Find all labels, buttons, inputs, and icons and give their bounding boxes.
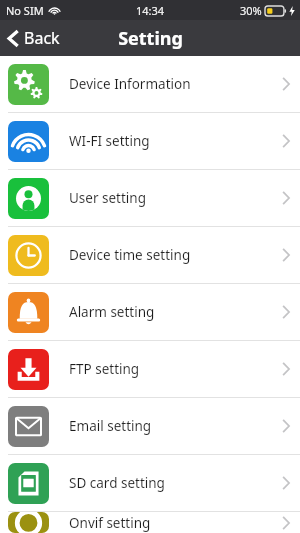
staticText: Back: [24, 27, 60, 49]
button[interactable]: FTP setting: [0, 341, 300, 397]
staticText: User setting: [69, 189, 146, 207]
staticText: SD card setting: [69, 474, 165, 492]
staticText: Device time setting: [69, 246, 191, 264]
staticText: WI-FI setting: [69, 132, 150, 150]
button[interactable]: Device Information: [0, 56, 300, 112]
button[interactable]: Alarm setting: [0, 284, 300, 340]
button[interactable]: Back: [0, 23, 70, 53]
staticText: Onvif setting: [69, 514, 151, 532]
staticText: 14:34: [136, 3, 165, 18]
staticText: Alarm setting: [69, 303, 155, 321]
button[interactable]: Device time setting: [0, 227, 300, 283]
staticText: 30%: [240, 3, 262, 18]
button[interactable]: Email setting: [0, 398, 300, 454]
button[interactable]: WI-FI setting: [0, 113, 300, 169]
button[interactable]: User setting: [0, 170, 300, 226]
button[interactable]: Onvif setting: [0, 512, 300, 533]
staticText: Email setting: [69, 417, 152, 435]
staticText: No SIM: [6, 3, 44, 18]
staticText: Device Information: [69, 75, 191, 93]
button[interactable]: SD card setting: [0, 455, 300, 511]
staticText: FTP setting: [69, 360, 140, 378]
staticText: Setting: [118, 26, 183, 51]
